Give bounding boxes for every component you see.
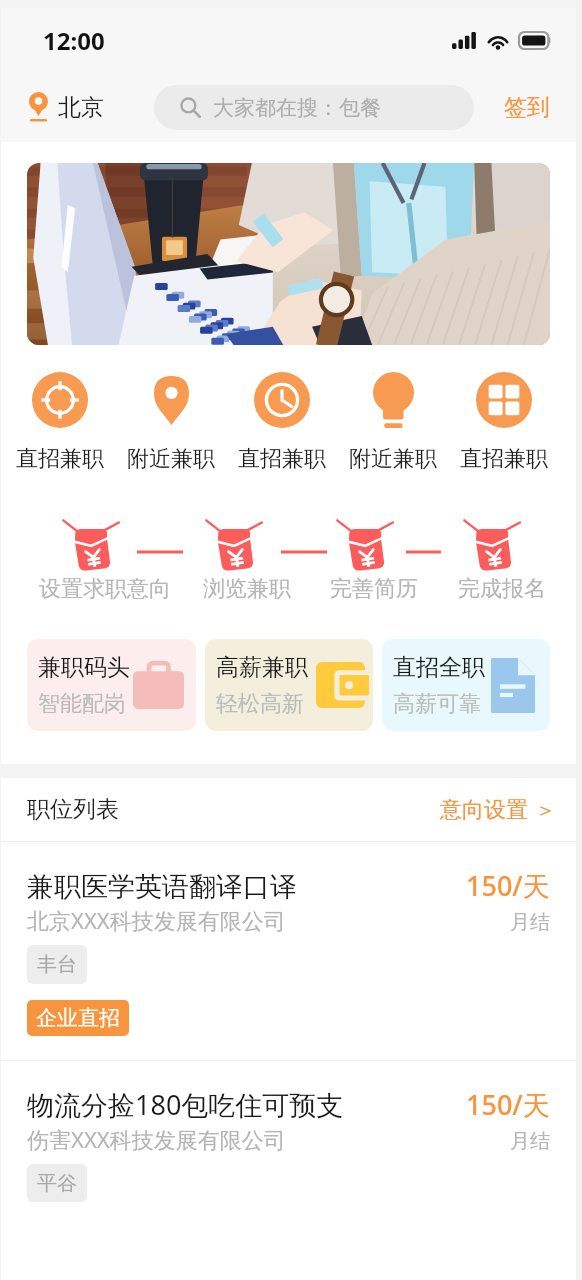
staticText: 职位列表 bbox=[27, 795, 119, 824]
staticText: 月结 bbox=[510, 1129, 550, 1154]
staticText: 大家都在搜：包餐 bbox=[213, 95, 381, 121]
staticText: 智能配岗 bbox=[38, 690, 126, 718]
button[interactable]: 直招兼职 bbox=[449, 371, 559, 473]
button[interactable]: 直招兼职 bbox=[5, 371, 115, 473]
staticText: 直招全职 bbox=[393, 653, 485, 682]
button[interactable]: 附近兼职 bbox=[116, 371, 226, 473]
staticText: 平谷 bbox=[37, 1171, 77, 1195]
button[interactable]: 意向设置 bbox=[440, 790, 556, 830]
staticText: 企业直招 bbox=[36, 1005, 120, 1031]
staticText: 完成报名 bbox=[422, 575, 582, 603]
staticText: 12:00 bbox=[43, 24, 105, 57]
staticText: 物流分捡180包吃住可预支 bbox=[27, 1086, 344, 1123]
staticText: 附近兼职 bbox=[349, 445, 437, 473]
staticText: 伤害XXX科技发展有限公司 bbox=[27, 1124, 286, 1154]
staticText: 轻松高新 bbox=[216, 690, 304, 718]
staticText: 兼职医学英语翻译口译 bbox=[27, 870, 297, 904]
button[interactable]: 附近兼职 bbox=[338, 371, 448, 473]
staticText: 完善简历 bbox=[294, 575, 454, 603]
button[interactable]: 高薪兼职 bbox=[205, 639, 373, 731]
staticText: 浏览兼职 bbox=[167, 575, 327, 603]
staticText: 附近兼职 bbox=[127, 445, 215, 473]
button[interactable]: 物流分捡180包吃住可预支 bbox=[1, 1061, 576, 1280]
staticText: 意向设置 bbox=[440, 796, 528, 824]
button[interactable] bbox=[61, 515, 123, 577]
staticText: 设置求职意向 bbox=[25, 575, 185, 603]
staticText: 北京 bbox=[58, 93, 104, 122]
button[interactable]: 北京 bbox=[27, 84, 106, 130]
button[interactable] bbox=[204, 515, 266, 577]
staticText: 150/天 bbox=[466, 867, 550, 904]
staticText: 直招兼职 bbox=[460, 445, 548, 473]
staticText: 150/天 bbox=[466, 1086, 550, 1123]
button[interactable]: 直招全职 bbox=[382, 639, 550, 731]
staticText: 高薪兼职 bbox=[216, 653, 308, 682]
button[interactable] bbox=[462, 515, 524, 577]
button[interactable]: 兼职医学英语翻译口译 bbox=[1, 842, 576, 1060]
staticText: ＞ bbox=[535, 797, 556, 823]
staticText: 高薪可靠 bbox=[393, 690, 481, 718]
button[interactable]: Banner bbox=[27, 163, 550, 345]
staticText: 直招兼职 bbox=[16, 445, 104, 473]
staticText: 签到 bbox=[504, 93, 550, 122]
staticText: 直招兼职 bbox=[238, 445, 326, 473]
button[interactable]: 兼职码头 bbox=[27, 639, 196, 731]
button[interactable]: 大家都在搜：包餐 bbox=[154, 85, 474, 130]
button[interactable]: 直招兼职 bbox=[227, 371, 337, 473]
button[interactable]: 签到 bbox=[500, 87, 554, 128]
staticText: 月结 bbox=[510, 910, 550, 935]
button[interactable] bbox=[335, 515, 397, 577]
staticText: 北京XXX科技发展有限公司 bbox=[27, 905, 286, 935]
staticText: 丰台 bbox=[37, 952, 77, 977]
staticText: 兼职码头 bbox=[38, 653, 130, 682]
